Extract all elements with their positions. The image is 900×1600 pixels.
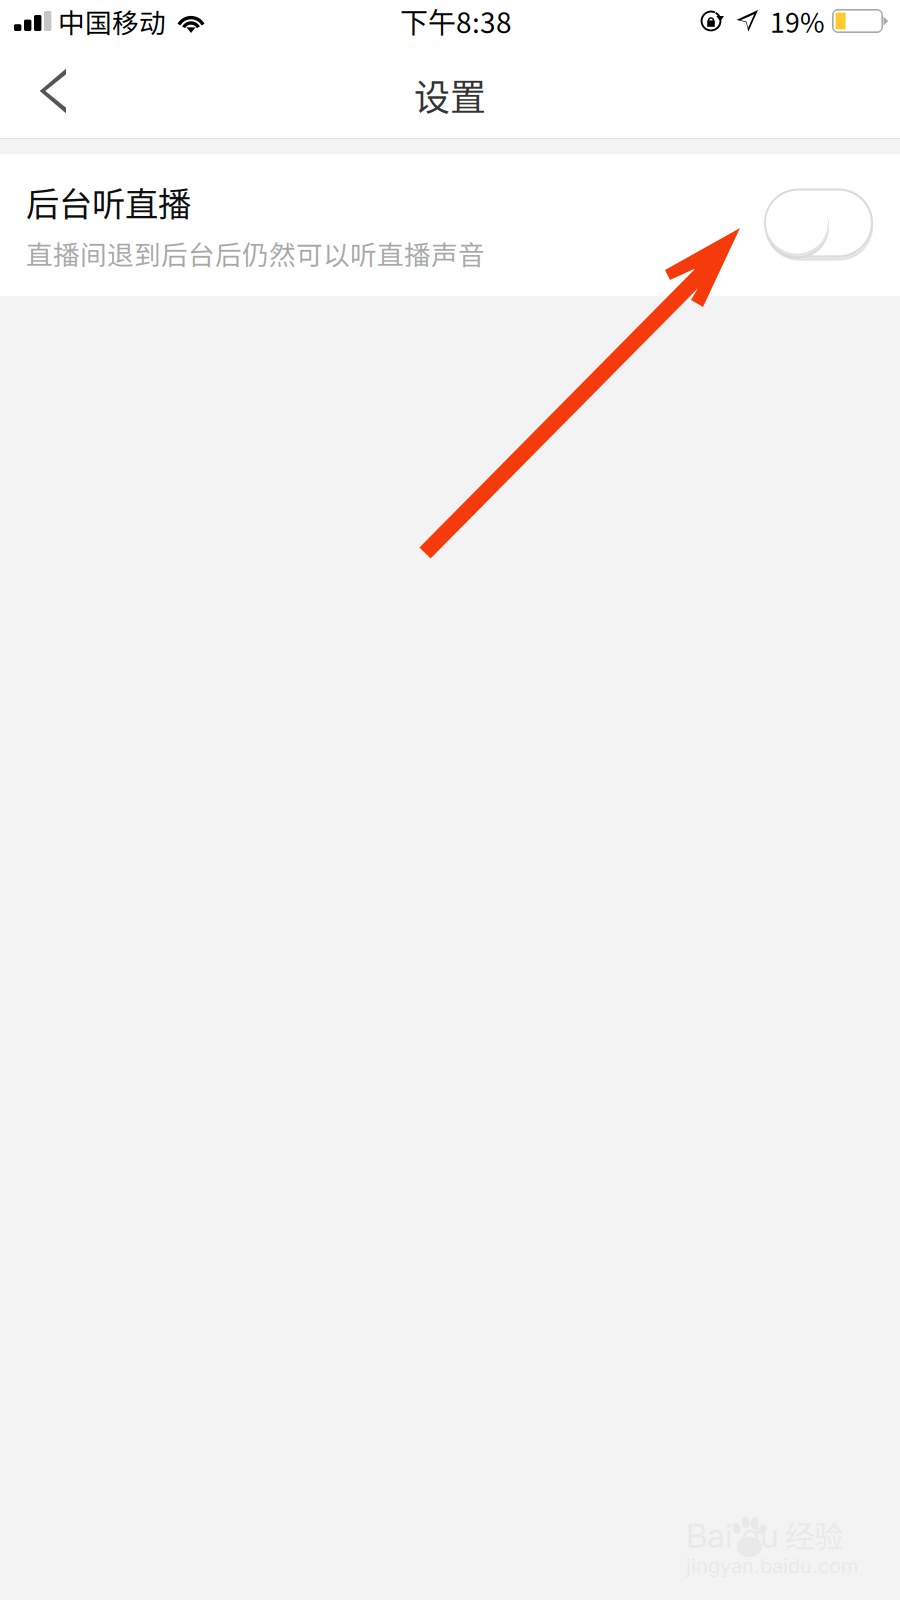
- staticText: 直播间退到后台后仍然可以听直播声音: [26, 234, 485, 272]
- staticText: 19%: [770, 2, 825, 40]
- button[interactable]: 后台听直播开关: [765, 189, 873, 260]
- staticText: 后台听直播: [26, 178, 191, 226]
- staticText: Bai: [686, 1515, 732, 1556]
- staticText: 下午8:38: [400, 1, 512, 41]
- button[interactable]: 后台听直播: [0, 154, 900, 296]
- staticText: du: [741, 1515, 779, 1556]
- staticText: 中国移动: [58, 2, 166, 40]
- staticText: jingyan.baidu.com: [686, 1554, 858, 1578]
- staticText: 设置: [414, 69, 486, 121]
- staticText: 经验: [785, 1513, 843, 1556]
- button[interactable]: 返回: [0, 52, 104, 138]
